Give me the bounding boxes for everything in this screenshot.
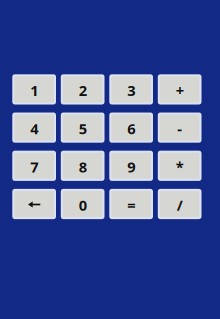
- staticText: 9: [127, 157, 135, 177]
- button[interactable]: 4: [13, 113, 55, 142]
- staticText: 3: [127, 81, 135, 100]
- button[interactable]: 0: [62, 190, 103, 218]
- button[interactable]: 6: [110, 113, 152, 142]
- button[interactable]: =: [110, 190, 152, 218]
- staticText: /: [177, 195, 183, 215]
- staticText: 6: [127, 119, 135, 138]
- staticText: 1: [30, 81, 38, 100]
- staticText: 0: [79, 195, 87, 215]
- staticText: 5: [79, 119, 87, 138]
- staticText: 7: [30, 157, 38, 177]
- button[interactable]: 3: [110, 75, 152, 103]
- button[interactable]: Delete: [13, 190, 55, 218]
- staticText: =: [127, 195, 135, 215]
- button[interactable]: -: [159, 113, 200, 142]
- button[interactable]: 8: [62, 152, 103, 180]
- button[interactable]: 9: [110, 152, 152, 180]
- button[interactable]: 5: [62, 113, 103, 142]
- staticText: 2: [79, 81, 87, 100]
- button[interactable]: +: [159, 75, 200, 103]
- button[interactable]: *: [159, 152, 200, 180]
- staticText: 4: [30, 119, 38, 138]
- staticText: 8: [79, 157, 87, 177]
- staticText: -: [177, 119, 182, 138]
- staticText: +: [176, 81, 184, 100]
- button[interactable]: 2: [62, 75, 103, 103]
- button[interactable]: 1: [13, 75, 55, 103]
- button[interactable]: /: [159, 190, 200, 218]
- staticText: *: [176, 157, 184, 177]
- button[interactable]: 7: [13, 152, 55, 180]
